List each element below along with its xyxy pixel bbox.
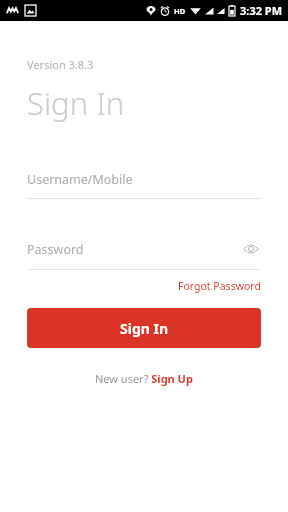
staticText: Password <box>27 241 84 258</box>
button[interactable]: New user? Sign Up <box>91 368 197 389</box>
button[interactable]: Password <box>27 239 261 270</box>
staticText: Forgot Password <box>178 279 261 293</box>
staticText: Version 3.8.3 <box>27 57 94 72</box>
button[interactable]: Sign In <box>27 308 261 348</box>
staticText: 3:32 PM <box>240 3 283 18</box>
staticText: HD <box>174 6 186 16</box>
staticText: Username/Mobile <box>27 171 133 188</box>
button[interactable]: Show password <box>241 239 261 259</box>
staticText: New user? Sign Up <box>95 371 193 386</box>
staticText: Sign In <box>27 82 125 124</box>
button[interactable]: Username/Mobile <box>27 171 261 199</box>
button[interactable]: Forgot Password <box>176 277 263 295</box>
staticText: Sign In <box>120 319 169 338</box>
